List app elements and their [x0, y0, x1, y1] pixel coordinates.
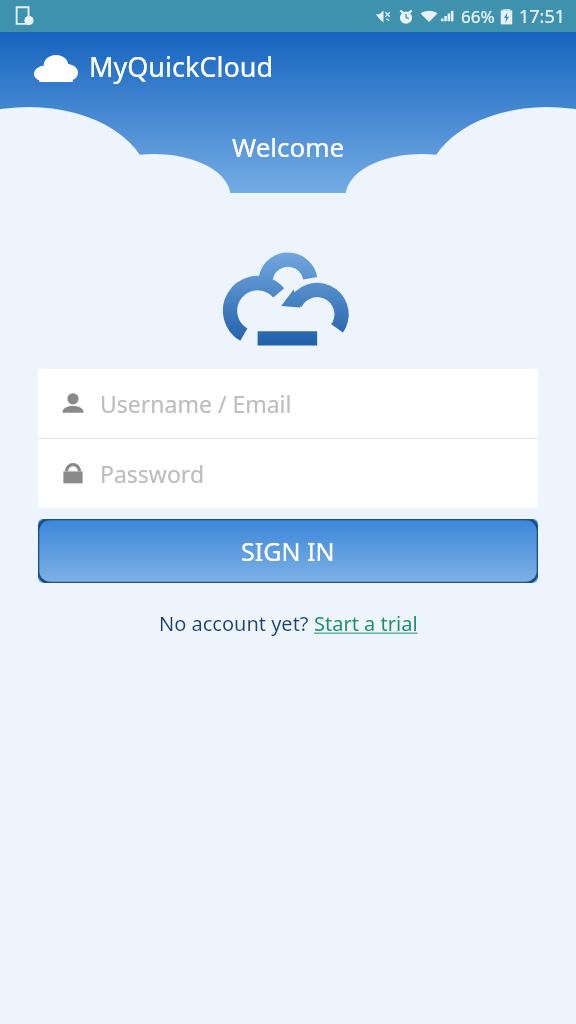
staticText: Start a trial — [314, 610, 418, 637]
staticText: Welcome — [232, 129, 345, 164]
button[interactable]: SIGN IN — [38, 519, 538, 583]
staticText: Username / Email — [100, 388, 292, 419]
button[interactable]: Password — [38, 439, 538, 508]
button[interactable]: Username / Email — [38, 369, 538, 438]
staticText: Password — [100, 458, 205, 489]
staticText: SIGN IN — [241, 534, 335, 568]
staticText: No account yet? — [159, 610, 314, 637]
staticText: 17:51 — [519, 4, 566, 29]
staticText: 66% — [461, 5, 495, 28]
staticText: MyQuickCloud — [89, 48, 274, 85]
button[interactable]: Start a trial — [314, 610, 418, 637]
